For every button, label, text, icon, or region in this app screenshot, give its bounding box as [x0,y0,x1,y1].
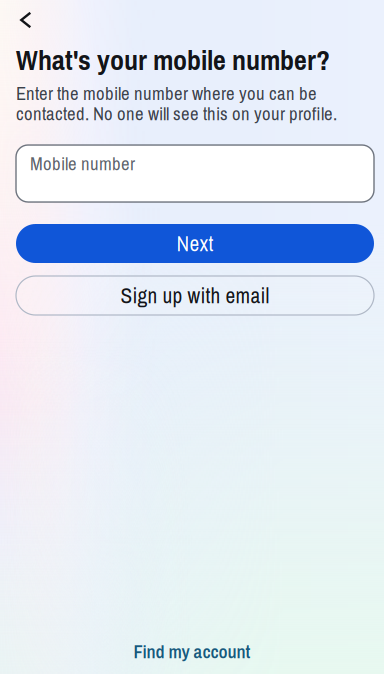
staticText: Mobile number [30,151,135,176]
button[interactable]: Back [0,8,44,32]
button[interactable]: Next [16,224,374,263]
staticText: Next [176,229,213,258]
staticText: What's your mobile number? [16,41,330,79]
staticText: Sign up with email [120,281,269,310]
staticText: contacted. No one will see this on your … [16,101,337,126]
button[interactable]: Find my account [119,630,264,673]
button[interactable]: Sign up with email [16,276,374,315]
staticText: Find my account [133,639,250,664]
staticText: Enter the mobile number where you can be [16,81,317,106]
